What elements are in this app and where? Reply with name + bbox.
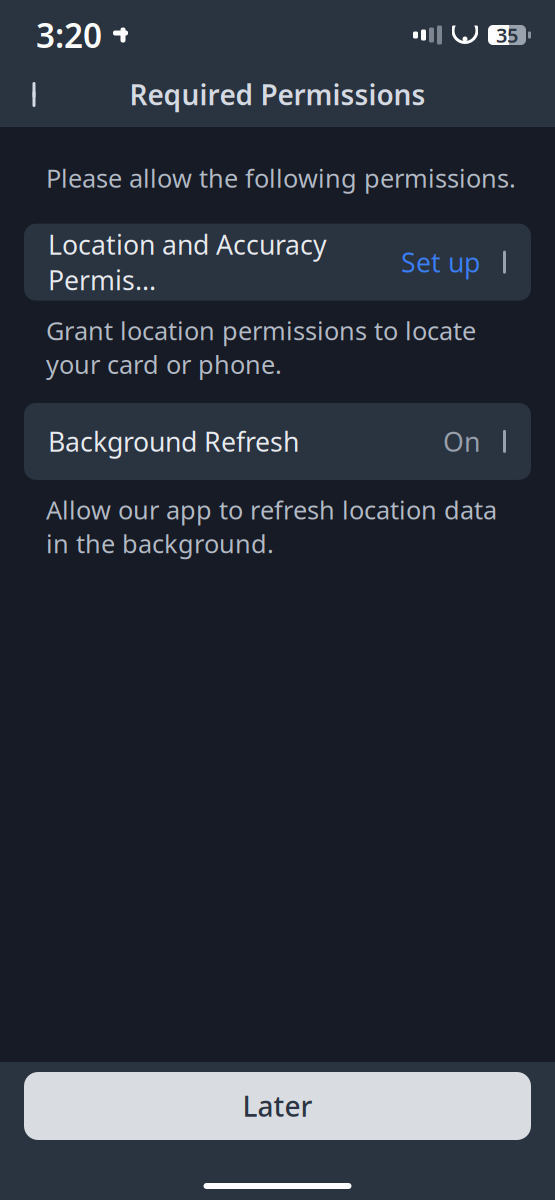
staticText: 35 [496,22,518,48]
staticText: Allow our app to refresh location data i… [46,493,497,560]
button[interactable]: Back [8,66,64,122]
button[interactable]: Location and Accuracy Permis... [24,224,531,301]
staticText: Later [242,1087,312,1125]
staticText: Please allow the following permissions. [46,161,516,195]
staticText: Grant location permissions to locate you… [46,314,476,381]
staticText: On [443,424,480,459]
staticText: Background Refresh [48,424,299,459]
button[interactable]: Later [24,1072,531,1140]
staticText: Set up [401,244,480,280]
staticText: Required Permissions [129,76,425,113]
staticText: 3:20 [36,13,102,57]
button[interactable]: Background Refresh [24,403,531,480]
staticText: Location and Accuracy Permis... [48,227,327,297]
